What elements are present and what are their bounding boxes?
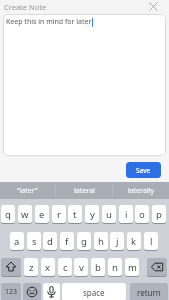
staticText: Create Note	[4, 2, 47, 12]
button[interactable]: u	[102, 205, 116, 224]
button[interactable]: o	[135, 205, 149, 224]
staticText: z	[29, 261, 34, 274]
button[interactable]: return	[130, 283, 168, 300]
staticText: Keep this in mind for later	[6, 17, 92, 27]
button[interactable]	[147, 258, 167, 277]
button[interactable]	[23, 283, 41, 300]
button[interactable]: p	[152, 205, 166, 224]
staticText: d	[47, 235, 53, 248]
button[interactable]: m	[125, 258, 139, 277]
button[interactable]: f	[60, 232, 74, 251]
staticText: p	[156, 208, 162, 221]
staticText: b	[95, 261, 101, 274]
staticText: Save	[136, 166, 151, 175]
button[interactable]: i	[119, 205, 133, 224]
staticText: s	[32, 235, 37, 248]
button[interactable]	[148, 1, 159, 12]
button[interactable]	[1, 258, 21, 277]
staticText: l	[150, 235, 153, 248]
button[interactable]: h	[94, 232, 108, 251]
button[interactable]: laterally	[113, 182, 169, 199]
staticText: y	[90, 208, 95, 221]
button[interactable]: w	[18, 205, 32, 224]
staticText: q	[5, 208, 11, 221]
staticText: g	[81, 235, 87, 248]
staticText: u	[106, 208, 112, 221]
button[interactable]: 123	[1, 283, 21, 300]
button[interactable]: v	[74, 258, 88, 277]
staticText: a	[14, 235, 20, 248]
button[interactable]: n	[108, 258, 122, 277]
staticText: n	[112, 261, 118, 274]
button[interactable]: s	[27, 232, 41, 251]
button[interactable]: space	[62, 283, 126, 300]
staticText: i	[125, 208, 128, 221]
staticText: t	[73, 208, 77, 221]
staticText: space	[83, 287, 105, 298]
button[interactable]	[43, 283, 60, 300]
staticText: k	[131, 235, 137, 248]
staticText: f	[65, 235, 69, 248]
button[interactable]: z	[24, 258, 38, 277]
button[interactable]: Keep this in mind for later	[3, 14, 166, 156]
button[interactable]: d	[43, 232, 57, 251]
staticText: laterally	[128, 186, 155, 196]
staticText: return	[137, 287, 161, 298]
button[interactable]: b	[91, 258, 105, 277]
button[interactable]: q	[1, 205, 15, 224]
staticText: w	[21, 208, 29, 221]
button[interactable]: lateral	[56, 182, 112, 199]
staticText: lateral	[74, 186, 95, 196]
button[interactable]: Save	[126, 162, 161, 178]
staticText: m	[128, 261, 137, 274]
staticText: e	[39, 208, 45, 221]
button[interactable]: e	[35, 205, 49, 224]
button[interactable]: k	[127, 232, 141, 251]
button[interactable]: y	[85, 205, 99, 224]
button[interactable]: “later”	[0, 182, 55, 199]
button[interactable]: g	[77, 232, 91, 251]
staticText: o	[139, 208, 145, 221]
staticText: x	[45, 261, 51, 274]
button[interactable]: c	[58, 258, 72, 277]
staticText: h	[98, 235, 104, 248]
button[interactable]: t	[68, 205, 82, 224]
button[interactable]: l	[144, 232, 158, 251]
staticText: c	[63, 261, 68, 274]
button[interactable]: x	[41, 258, 55, 277]
staticText: j	[116, 235, 119, 248]
staticText: 123	[5, 287, 18, 297]
staticText: r	[57, 208, 61, 221]
button[interactable]: r	[52, 205, 66, 224]
button[interactable]: j	[110, 232, 124, 251]
staticText: v	[79, 261, 84, 274]
button[interactable]: a	[10, 232, 24, 251]
staticText: “later”	[17, 186, 38, 196]
